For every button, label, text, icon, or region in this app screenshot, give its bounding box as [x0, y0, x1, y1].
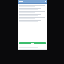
- button[interactable]: [19, 20, 46, 22]
- button[interactable]: [19, 17, 46, 19]
- button[interactable]: [19, 11, 46, 13]
- button[interactable]: [19, 5, 46, 7]
- button[interactable]: More options: [18, 0, 47, 3]
- button[interactable]: [19, 8, 46, 10]
- button[interactable]: [19, 42, 46, 44]
- button[interactable]: [19, 14, 46, 16]
